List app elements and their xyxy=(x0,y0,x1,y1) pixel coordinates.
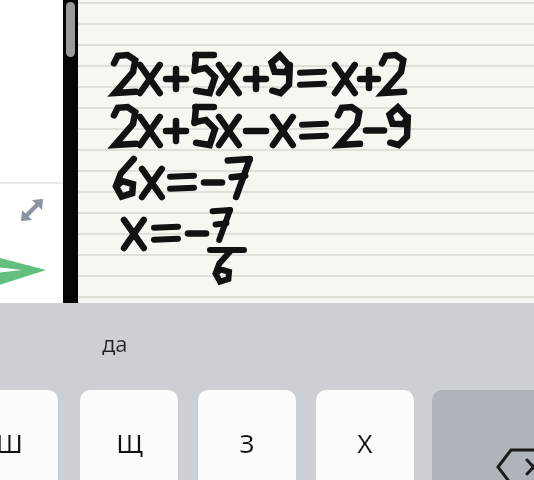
button[interactable]: Ш xyxy=(0,390,58,480)
button[interactable]: Send xyxy=(0,252,48,294)
staticText: Х xyxy=(357,425,373,460)
button[interactable]: Backspace xyxy=(432,390,534,480)
button[interactable]: да xyxy=(88,321,148,365)
staticText: З xyxy=(239,425,255,460)
button[interactable]: З xyxy=(198,390,296,480)
button[interactable]: Щ xyxy=(80,390,178,480)
staticText: Ш xyxy=(0,425,23,460)
button[interactable] xyxy=(78,0,534,303)
staticText: Щ xyxy=(116,425,143,460)
button[interactable]: Expand xyxy=(14,192,50,228)
button[interactable]: Х xyxy=(316,390,414,480)
staticText: да xyxy=(102,328,128,358)
